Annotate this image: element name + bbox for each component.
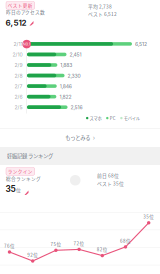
staticText: 2/8 — [14, 73, 22, 79]
staticText: › — [93, 134, 95, 141]
staticText: 1,846 — [60, 83, 72, 89]
staticText: 35位 — [143, 213, 154, 220]
staticText: 92位 — [27, 251, 38, 258]
staticText: 82位 — [97, 246, 108, 253]
staticText: 6,512 — [135, 41, 147, 47]
staticText: 76位 — [4, 242, 15, 249]
staticText: 6,512 — [5, 18, 26, 28]
button[interactable]: もっとみる — [0, 128, 160, 146]
staticText: 75位 — [50, 241, 61, 247]
staticText: 1,883 — [60, 62, 72, 68]
staticText: ベスト 35位 — [97, 180, 124, 187]
staticText: 2/5 — [14, 104, 22, 110]
staticText: 前日 68位 — [97, 172, 119, 179]
staticText: ランクイン — [8, 168, 33, 175]
staticText: スマホ — [90, 115, 102, 121]
staticText: 2/11 — [13, 41, 22, 47]
staticText: 35 — [5, 184, 15, 194]
staticText: 2/7 — [14, 83, 22, 89]
staticText: 妊娠記録 ランキング — [7, 152, 53, 160]
staticText: モバイル — [124, 115, 140, 121]
staticText: 2,516 — [71, 104, 83, 110]
staticText: 平均 2,738 — [88, 3, 112, 10]
staticText: 1,822 — [59, 94, 71, 100]
staticText: PC — [110, 115, 116, 121]
staticText: 2/10 — [12, 52, 22, 58]
staticText: 72位 — [74, 240, 85, 246]
staticText: No.1 — [23, 42, 31, 46]
staticText: ベスト 6,512 — [88, 10, 117, 17]
staticText: 位 — [16, 186, 21, 193]
staticText: 総合ランキング — [6, 175, 41, 182]
staticText: 昨日のアクセス数 — [6, 8, 45, 15]
staticText: 68位 — [120, 237, 131, 244]
staticText: 2,330 — [68, 73, 81, 79]
staticText: 2,451 — [69, 52, 81, 58]
staticText: もっとみる — [65, 134, 90, 141]
staticText: ベスト更新 — [8, 2, 33, 9]
staticText: 2/6 — [14, 94, 22, 100]
staticText: 2/9 — [14, 62, 22, 68]
